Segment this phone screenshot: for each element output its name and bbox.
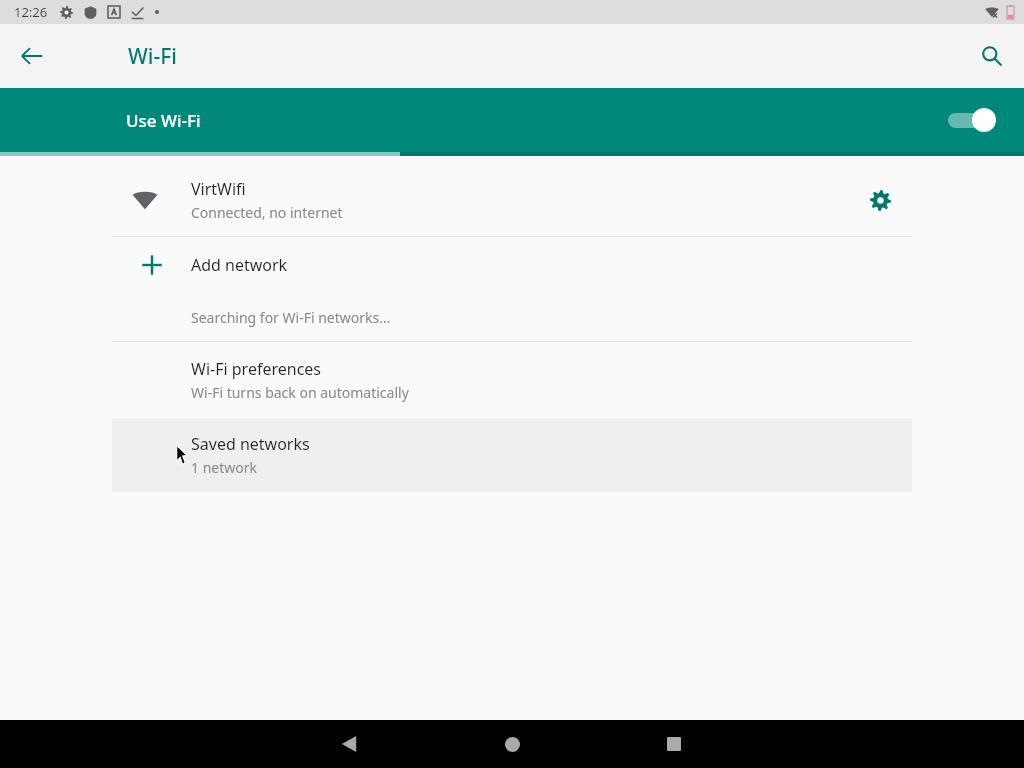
button[interactable]: Add network <box>0 237 1024 293</box>
staticText: VirtWifi <box>191 178 246 200</box>
staticText: Use Wi-Fi <box>126 109 201 132</box>
staticText: Wi-Fi <box>128 42 177 71</box>
button[interactable]: Back <box>8 32 56 80</box>
button[interactable]: Saved networks <box>112 418 912 492</box>
staticText: Wi-Fi turns back on automatically <box>191 383 409 402</box>
staticText: Connected, no internet <box>191 203 343 222</box>
button[interactable]: Search <box>968 32 1016 80</box>
staticText: Saved networks <box>191 433 310 455</box>
staticText: 1 network <box>191 458 257 477</box>
button[interactable]: Home <box>488 720 536 768</box>
button[interactable]: Wi-Fi preferences <box>0 342 1024 418</box>
button[interactable]: Back <box>325 720 373 768</box>
button[interactable]: Use Wi-Fi <box>0 88 1024 152</box>
button[interactable]: Use Wi-Fi toggle <box>940 103 996 137</box>
staticText: Wi-Fi preferences <box>191 358 322 380</box>
button[interactable]: VirtWifi <box>0 164 1024 236</box>
staticText: Add network <box>191 254 288 276</box>
button[interactable]: Network settings <box>860 180 900 220</box>
staticText: 12:26 <box>14 3 48 21</box>
staticText: Searching for Wi-Fi networks… <box>191 308 391 327</box>
button[interactable]: Recent apps <box>650 720 698 768</box>
